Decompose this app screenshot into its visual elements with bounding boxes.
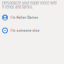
- button[interactable]: I'm Kellen Barnes: [0, 11, 64, 24]
- staticText: Personalize your experience with: [2, 1, 57, 5]
- staticText: friends and family.: [2, 5, 33, 9]
- staticText: I'm someone else: [10, 29, 39, 32]
- staticText: I'm Kellen Barnes: [10, 16, 38, 19]
- button[interactable]: I'm someone else: [0, 24, 64, 37]
